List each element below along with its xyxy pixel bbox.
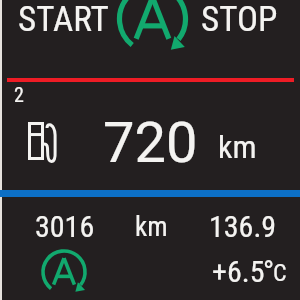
staticText: START (18, 0, 109, 40)
staticText: ° (263, 254, 275, 289)
staticText: 3016 (35, 209, 95, 244)
staticText: C (273, 259, 287, 287)
staticText: 2 (14, 83, 24, 106)
button[interactable]: Auto start stop (38, 247, 88, 297)
staticText: STOP (201, 0, 278, 40)
other: Auto start stop active (0, 0, 300, 74)
staticText: km (135, 211, 168, 243)
staticText: +6.5 (212, 254, 265, 289)
staticText: km (218, 128, 257, 166)
button[interactable]: START (0, 0, 300, 74)
staticText: 136.9 (209, 209, 277, 244)
staticText: 720 (103, 110, 198, 176)
